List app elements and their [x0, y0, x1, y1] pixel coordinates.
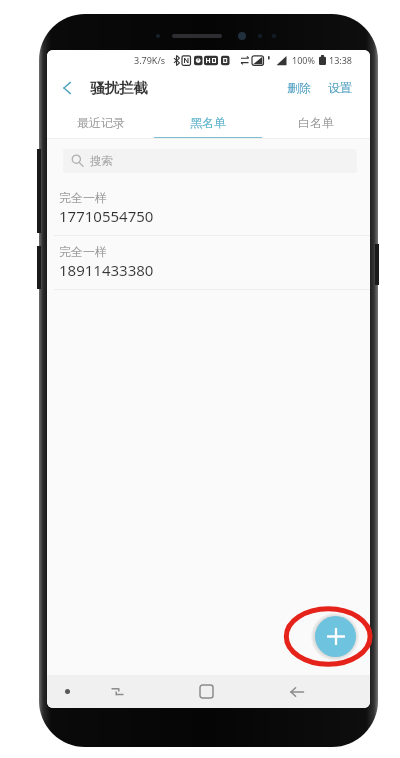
- staticText: 搜索: [90, 154, 113, 168]
- staticText: 18911433380: [59, 260, 154, 280]
- staticText: 删除: [287, 80, 311, 95]
- staticText: 设置: [328, 80, 352, 95]
- staticText: 100%: [292, 54, 315, 66]
- button[interactable]: Recents: [188, 675, 224, 708]
- button[interactable]: 搜索: [63, 149, 357, 173]
- button[interactable]: 黑名单: [154, 105, 262, 139]
- button[interactable]: 设置: [324, 72, 356, 103]
- button[interactable]: Add: [315, 616, 356, 657]
- staticText: 13:38: [329, 54, 353, 66]
- staticText: 3.79K/s: [134, 54, 166, 66]
- staticText: 最近记录: [77, 115, 125, 130]
- staticText: 17710554750: [59, 206, 154, 226]
- button[interactable]: 完全一样: [47, 182, 370, 236]
- staticText: 完全一样: [59, 244, 107, 259]
- button[interactable]: 完全一样: [47, 236, 370, 290]
- staticText: 完全一样: [59, 190, 107, 205]
- button[interactable]: Back: [279, 675, 315, 708]
- button[interactable]: 删除: [283, 72, 315, 103]
- staticText: 骚扰拦截: [90, 79, 148, 97]
- staticText: 黑名单: [190, 115, 226, 130]
- button[interactable]: 白名单: [262, 105, 370, 139]
- button[interactable]: More: [49, 675, 86, 708]
- button[interactable]: 最近记录: [47, 105, 154, 139]
- button[interactable]: Switch tasks: [99, 675, 135, 708]
- button[interactable]: Back: [47, 70, 87, 105]
- staticText: 白名单: [298, 115, 334, 130]
